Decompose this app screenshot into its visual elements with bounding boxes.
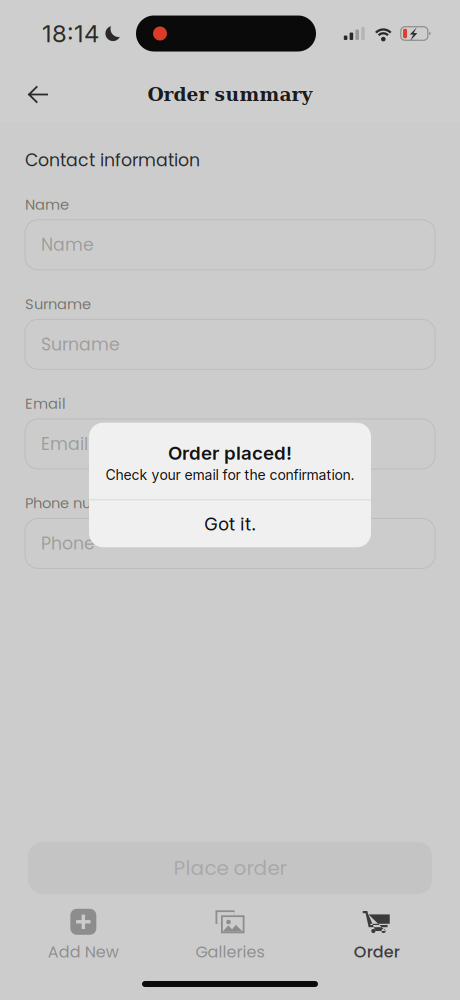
button[interactable]: Email <box>25 419 435 469</box>
staticText: Add New <box>48 941 119 963</box>
staticText: Order summary <box>147 83 312 105</box>
staticText: Name <box>41 233 94 257</box>
staticText: Surname <box>41 332 120 356</box>
staticText: Email <box>41 432 88 456</box>
staticText: Surname <box>25 294 91 314</box>
staticText: Check your email for the confirmation. <box>105 466 354 483</box>
staticText: 18:14 <box>42 19 99 48</box>
button[interactable]: Phone <box>25 518 435 568</box>
staticText: Phone number <box>25 493 130 513</box>
staticText: Place order <box>173 854 286 882</box>
button[interactable]: Surname <box>25 319 435 369</box>
button[interactable]: Add New <box>10 904 157 968</box>
button[interactable]: Galleries <box>157 904 303 968</box>
button[interactable]: Place order <box>28 842 432 894</box>
button[interactable]: Got it. <box>89 500 371 547</box>
staticText: Contact information <box>25 148 200 172</box>
staticText: Name <box>25 194 69 215</box>
staticText: Got it. <box>204 512 256 535</box>
button[interactable]: Back <box>18 74 58 114</box>
button[interactable]: Name <box>25 220 435 270</box>
staticText: Email <box>25 393 66 414</box>
staticText: Phone <box>41 531 95 556</box>
staticText: Galleries <box>195 941 264 963</box>
staticText: Order <box>354 941 400 963</box>
staticText: Order placed! <box>168 442 292 464</box>
button[interactable]: Order <box>303 904 450 968</box>
